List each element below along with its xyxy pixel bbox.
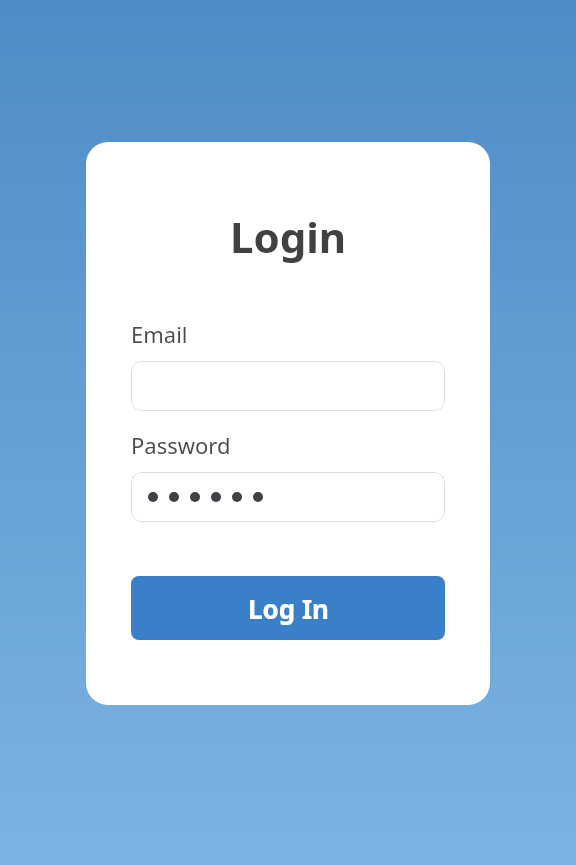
staticText: Log In: [248, 591, 329, 626]
staticText: Password: [131, 430, 231, 460]
button[interactable]: [131, 361, 445, 411]
staticText: Login: [86, 208, 490, 265]
button[interactable]: [131, 472, 445, 522]
button[interactable]: Log In: [131, 576, 445, 640]
staticText: Email: [131, 319, 188, 349]
